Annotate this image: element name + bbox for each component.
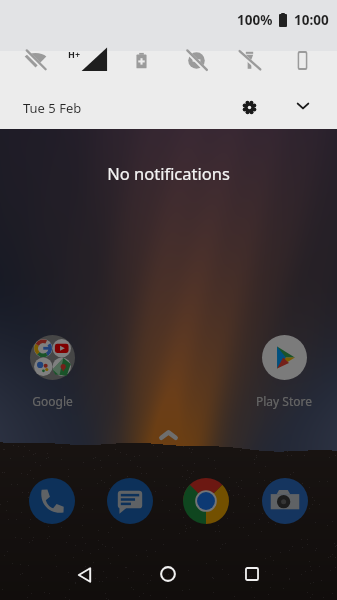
staticText: Play Store	[256, 393, 312, 409]
staticText: Tue 5 Feb	[23, 99, 82, 117]
button[interactable]: Settings	[234, 92, 264, 122]
button[interactable]: Quick setting	[125, 44, 157, 76]
button[interactable]: Quick setting	[286, 44, 318, 76]
staticText: Google	[32, 393, 73, 409]
button[interactable]: Messages	[105, 477, 155, 525]
button[interactable]: Camera	[260, 477, 310, 525]
staticText: H+	[68, 48, 81, 60]
button[interactable]: Quick setting	[233, 44, 265, 76]
button[interactable]: Expand quick settings	[288, 91, 318, 121]
button[interactable]: Play Store	[244, 335, 324, 409]
button[interactable]: Back	[56, 552, 112, 598]
button[interactable]: Home	[140, 551, 196, 597]
button[interactable]: Quick setting	[19, 44, 51, 76]
button[interactable]: Quick setting	[180, 44, 212, 76]
button[interactable]: Mobile data	[68, 44, 110, 74]
staticText: 10:00	[294, 11, 329, 29]
staticText: 100%	[237, 11, 273, 29]
button[interactable]: Chrome	[181, 477, 231, 525]
button[interactable]: Google	[12, 335, 92, 409]
staticText: No notifications	[0, 162, 337, 184]
button[interactable]: Recent apps	[224, 551, 280, 597]
button[interactable]: Phone	[27, 477, 77, 525]
